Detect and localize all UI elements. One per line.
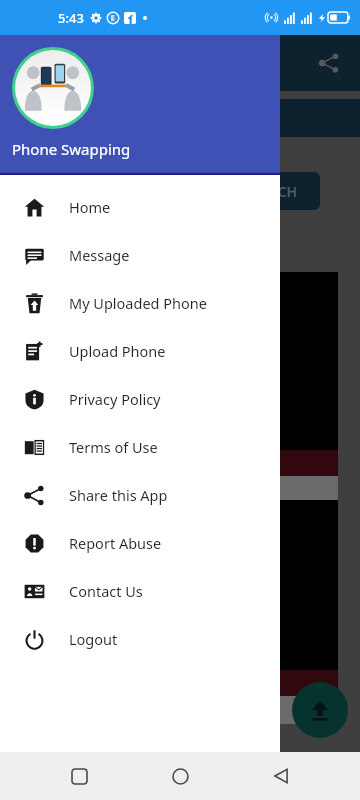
staticText: View More <box>136 480 210 500</box>
staticText: Upload Phone <box>69 341 166 361</box>
staticText: My Uploaded Phone <box>69 293 207 313</box>
button[interactable]: Upload <box>292 682 348 738</box>
button[interactable]: Contact Us <box>0 567 280 615</box>
button[interactable]: Home <box>0 183 280 231</box>
staticText: MATCH <box>249 182 297 201</box>
staticText: Report Abuse <box>69 533 162 553</box>
button[interactable]: Privacy Policy <box>0 375 280 423</box>
button[interactable]: Redmi Note 9 <box>128 500 338 724</box>
staticText: Share this App <box>69 485 168 505</box>
staticText: Home <box>69 197 111 217</box>
staticText: Contact Us <box>69 581 143 601</box>
button[interactable]: Upload Phone <box>0 327 280 375</box>
staticText: Logout <box>69 629 118 649</box>
button[interactable]: Report Abuse <box>0 519 280 567</box>
button[interactable]: Recent apps <box>57 754 101 798</box>
button[interactable]: Message <box>0 231 280 279</box>
button[interactable]: Back <box>259 754 303 798</box>
button[interactable]: Home <box>158 754 202 798</box>
button[interactable]: MATCH <box>225 172 320 210</box>
staticText: 5:43 <box>58 9 84 27</box>
button[interactable]: Share this App <box>0 471 280 519</box>
staticText: Terms of Use <box>69 437 158 457</box>
staticText: Phone Swapping <box>12 139 131 159</box>
button[interactable]: Terms of Use <box>0 423 280 471</box>
staticText: Privacy Policy <box>69 389 161 409</box>
button[interactable]: Samsung A54 <box>128 272 338 504</box>
button[interactable]: My Uploaded Phone <box>0 279 280 327</box>
button[interactable]: Logout <box>0 615 280 663</box>
staticText: Message <box>69 245 130 265</box>
button[interactable]: Share <box>312 46 346 80</box>
